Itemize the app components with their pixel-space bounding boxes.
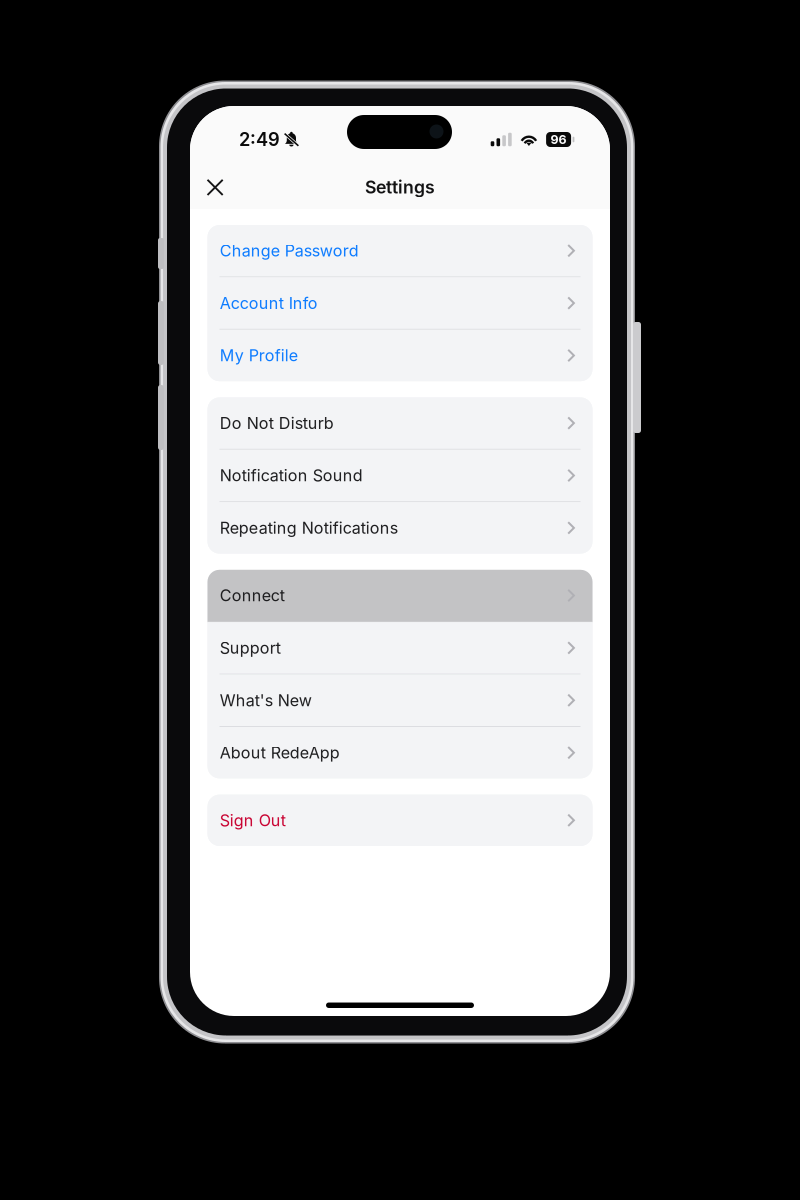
staticText: Notification Sound [220, 466, 363, 485]
staticText: About RedeApp [220, 743, 340, 762]
button[interactable]: Notification Sound [207, 450, 592, 501]
button[interactable]: Account Info [207, 277, 592, 329]
staticText: 2:49 [239, 128, 280, 150]
button[interactable]: Close [193, 165, 237, 209]
staticText: Repeating Notifications [220, 518, 398, 538]
staticText: Account Info [220, 293, 318, 313]
button[interactable]: Sign Out [207, 795, 592, 846]
button[interactable]: My Profile [207, 330, 592, 381]
staticText: Do Not Disturb [220, 413, 334, 433]
staticText: Settings [365, 176, 435, 198]
button[interactable]: Connect [207, 570, 592, 621]
staticText: My Profile [220, 346, 298, 365]
button[interactable]: Change Password [207, 225, 592, 276]
button[interactable]: What's New [207, 675, 592, 726]
button[interactable]: About RedeApp [207, 727, 592, 778]
button[interactable]: Repeating Notifications [207, 502, 592, 554]
staticText: Support [220, 638, 281, 658]
button[interactable]: Support [207, 622, 592, 674]
staticText: 96 [551, 132, 567, 147]
staticText: Connect [220, 586, 285, 605]
staticText: Change Password [220, 241, 359, 260]
staticText: What's New [220, 691, 312, 710]
staticText: Sign Out [220, 811, 286, 830]
button[interactable]: Do Not Disturb [207, 397, 592, 449]
